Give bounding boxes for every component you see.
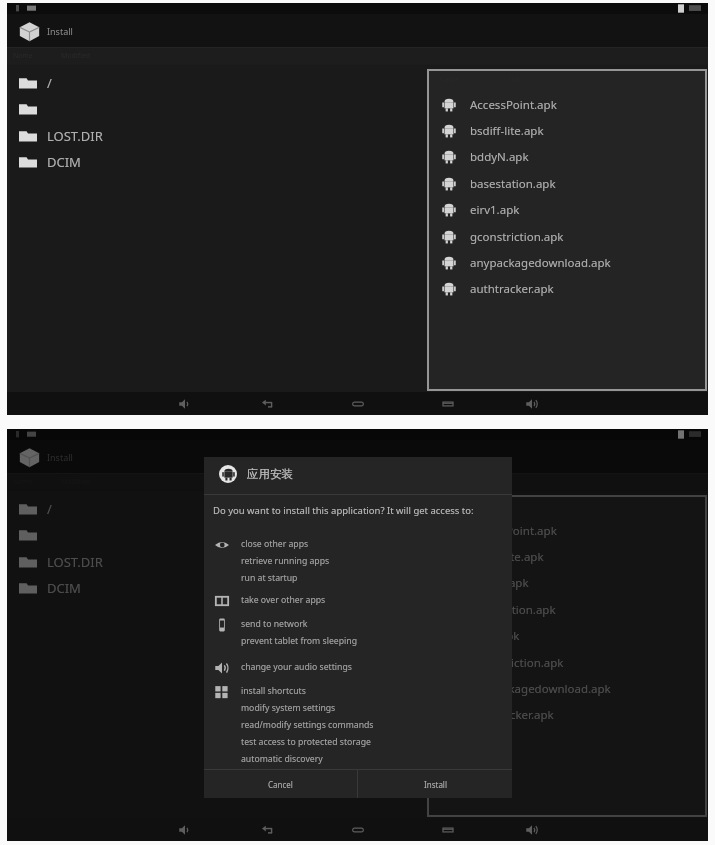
button[interactable]: / (19, 496, 299, 522)
staticText: Size (508, 501, 520, 510)
button[interactable]: basestation.apk (442, 597, 692, 623)
button[interactable]: Volume down (175, 820, 195, 840)
button[interactable]: eirv1.apk (442, 197, 692, 223)
button[interactable]: authtracker.apk (442, 276, 692, 302)
button[interactable]: eirv1.apk (442, 623, 692, 649)
button[interactable]: LOST.DIR (19, 123, 299, 149)
staticText: 应用安装 (247, 467, 293, 481)
button[interactable]: authtracker.apk (442, 702, 692, 728)
button[interactable]: gconstriction.apk (442, 650, 692, 676)
staticText: send to network (241, 618, 308, 630)
button[interactable]: basestation.apk (442, 171, 692, 197)
button[interactable] (19, 522, 299, 548)
staticText: install shortcuts (241, 685, 306, 697)
button[interactable]: Volume up (522, 394, 542, 414)
staticText: authtracker.apk (470, 281, 554, 297)
staticText: Do you want to install this application?… (213, 504, 474, 517)
button[interactable] (19, 96, 299, 122)
staticText: prevent tablet from sleeping (241, 635, 357, 647)
button[interactable]: AccessPoint.apk (442, 518, 692, 544)
button[interactable]: bsdiff-lite.apk (442, 118, 692, 144)
staticText: take over other apps (241, 594, 326, 606)
staticText: test access to protected storage (241, 736, 371, 748)
staticText: authtracker.apk (470, 707, 554, 723)
staticText: gconstriction.apk (470, 229, 564, 245)
button[interactable]: LOST.DIR (19, 549, 299, 575)
button[interactable]: Home (348, 820, 368, 840)
staticText: gconstriction.apk (470, 655, 564, 671)
staticText: close other apps (241, 538, 309, 550)
staticText: retrieve running apps (241, 555, 330, 567)
staticText: Install (47, 451, 73, 463)
staticText: basestation.apk (470, 176, 556, 192)
staticText: bddyN.apk (470, 575, 529, 591)
staticText: anypackagedownload.apk (470, 255, 611, 271)
staticText: bsdiff-lite.apk (470, 549, 544, 565)
button[interactable]: Recent apps (438, 394, 458, 414)
button[interactable]: AccessPoint.apk (442, 92, 692, 118)
staticText: run at startup (241, 572, 298, 584)
staticText: change your audio settings (241, 661, 352, 673)
staticText: eirv1.apk (470, 628, 520, 644)
staticText: Cancel (268, 779, 293, 790)
button[interactable]: bddyN.apk (442, 570, 692, 596)
button[interactable]: anypackagedownload.apk (442, 250, 692, 276)
button[interactable]: Back (258, 394, 278, 414)
staticText: Install (47, 25, 73, 37)
staticText: anypackagedownload.apk (470, 681, 611, 697)
staticText: AccessPoint.apk (470, 523, 557, 539)
staticText: DCIM (47, 579, 81, 597)
button[interactable]: bsdiff-lite.apk (442, 544, 692, 570)
button[interactable]: Volume down (175, 394, 195, 414)
staticText: DCIM (47, 153, 81, 171)
button[interactable]: bddyN.apk (442, 144, 692, 170)
staticText: bsdiff-lite.apk (470, 123, 544, 139)
button[interactable]: Recent apps (438, 820, 458, 840)
staticText: modify system settings (241, 702, 336, 714)
staticText: Name (440, 501, 459, 510)
staticText: eirv1.apk (470, 202, 520, 218)
button[interactable]: / (19, 70, 299, 96)
staticText: LOST.DIR (47, 127, 103, 145)
button[interactable]: anypackagedownload.apk (442, 676, 692, 702)
button[interactable]: DCIM (19, 575, 299, 601)
staticText: LOST.DIR (47, 553, 103, 571)
button[interactable]: Back (258, 820, 278, 840)
staticText: bddyN.apk (470, 149, 529, 165)
staticText: basestation.apk (470, 602, 556, 618)
staticText: Install (424, 779, 447, 790)
button[interactable]: gconstriction.apk (442, 224, 692, 250)
button[interactable]: Volume up (522, 820, 542, 840)
staticText: read/modify settings commands (241, 719, 374, 731)
button[interactable]: DCIM (19, 149, 299, 175)
button[interactable]: Home (348, 394, 368, 414)
staticText: / (47, 500, 52, 518)
button[interactable]: Install (358, 770, 512, 798)
staticText: / (47, 74, 52, 92)
button[interactable]: Cancel (204, 770, 357, 798)
staticText: AccessPoint.apk (470, 97, 557, 113)
staticText: automatic discovery (241, 753, 323, 765)
